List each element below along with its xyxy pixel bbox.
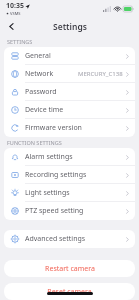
staticText: Password	[25, 87, 57, 97]
button[interactable]: Firmware version	[4, 119, 135, 137]
button[interactable]: Back	[4, 19, 19, 34]
staticText: 10:35	[6, 1, 24, 11]
staticText: PTZ speed setting	[25, 206, 84, 216]
staticText: Advanced settings	[25, 234, 86, 244]
staticText: Device time	[25, 105, 64, 115]
button[interactable]: Device time	[4, 101, 135, 119]
staticText: MERCURY_C138	[78, 70, 123, 78]
staticText: General	[25, 51, 51, 61]
button[interactable]: Light settings	[4, 184, 135, 202]
staticText: Firmware version	[25, 123, 82, 133]
staticText: VSMS	[10, 11, 21, 16]
staticText: Recording settings	[25, 170, 87, 180]
staticText: Network	[25, 69, 54, 79]
button[interactable]: Restart camera	[4, 260, 135, 277]
button[interactable]: Network	[4, 65, 135, 83]
button[interactable]: Recording settings	[4, 166, 135, 184]
button[interactable]: General	[4, 47, 135, 65]
staticText: Restart camera	[45, 264, 95, 274]
staticText: SETTINGS	[7, 38, 33, 45]
staticText: FUNCTION SETTINGS	[7, 139, 62, 146]
staticText: Alarm settings	[25, 152, 73, 162]
staticText: Light settings	[25, 188, 70, 198]
staticText: Reset camera	[47, 287, 92, 297]
button[interactable]: Alarm settings	[4, 148, 135, 166]
staticText: Settings	[53, 21, 87, 33]
button[interactable]: Advanced settings	[4, 230, 135, 248]
button[interactable]: Password	[4, 83, 135, 101]
button[interactable]: Reset camera	[4, 283, 135, 300]
button[interactable]: PTZ speed setting	[4, 202, 135, 220]
